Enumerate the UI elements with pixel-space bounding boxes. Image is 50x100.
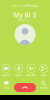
staticText: My Bl 3 [13,11,36,19]
staticText: search [39,86,47,89]
staticText: video [2,73,10,77]
button[interactable]: video [0,64,12,77]
button[interactable]: End call [14,83,36,92]
staticText: chat [4,86,9,89]
button[interactable]: add [37,64,50,77]
staticText: speaker [26,73,36,77]
staticText: Calling via WhatsApp [11,4,39,8]
button[interactable]: Search [37,81,49,89]
button[interactable]: mute [12,64,25,77]
staticText: Ringing… [18,19,32,22]
button[interactable]: Chat [0,81,12,89]
button[interactable]: speaker [25,64,37,77]
staticText: mute [15,73,22,77]
staticText: add [41,73,46,77]
